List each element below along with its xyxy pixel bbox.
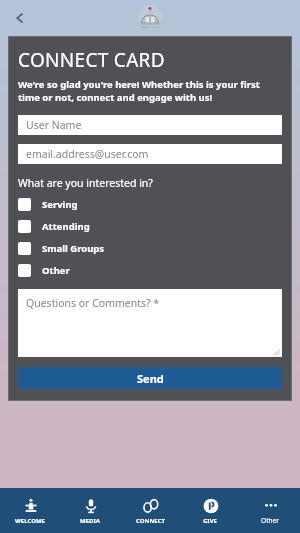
staticText: Send bbox=[137, 371, 164, 386]
button[interactable]: Questions or Comments? * bbox=[18, 289, 282, 357]
staticText: WELCOME bbox=[15, 517, 45, 525]
staticText: Serving bbox=[42, 198, 78, 211]
staticText: Small Groups bbox=[42, 242, 105, 255]
staticText: email.address@user.com bbox=[26, 147, 149, 161]
staticText: GIVE bbox=[203, 517, 217, 525]
staticText: Attending bbox=[42, 220, 90, 233]
staticText: Other bbox=[261, 516, 279, 525]
staticText: CONNECT CARD bbox=[18, 47, 165, 73]
button[interactable]: Back bbox=[6, 4, 34, 32]
button[interactable]: Serving bbox=[18, 198, 282, 211]
staticText: What are you interested in? bbox=[18, 176, 153, 190]
staticText: User Name bbox=[26, 118, 82, 132]
staticText: We're so glad you're here! Whether this … bbox=[18, 78, 282, 104]
button[interactable]: Other bbox=[240, 488, 300, 533]
button[interactable]: Small Groups bbox=[18, 242, 282, 255]
staticText: CONNECT bbox=[136, 517, 165, 525]
button[interactable]: Other bbox=[18, 264, 282, 277]
button[interactable]: Attending bbox=[18, 220, 282, 233]
button[interactable]: User Name bbox=[18, 115, 282, 135]
button[interactable]: GIVE bbox=[180, 488, 240, 533]
staticText: Other bbox=[42, 264, 70, 277]
button[interactable]: email.address@user.com bbox=[18, 144, 282, 164]
staticText: MEDIA bbox=[80, 517, 100, 525]
staticText: Questions or Comments? * bbox=[26, 296, 160, 310]
button[interactable]: Send bbox=[18, 367, 282, 389]
button[interactable]: CONNECT bbox=[120, 488, 180, 533]
button[interactable]: MEDIA bbox=[60, 488, 120, 533]
button[interactable]: WELCOME bbox=[0, 488, 60, 533]
